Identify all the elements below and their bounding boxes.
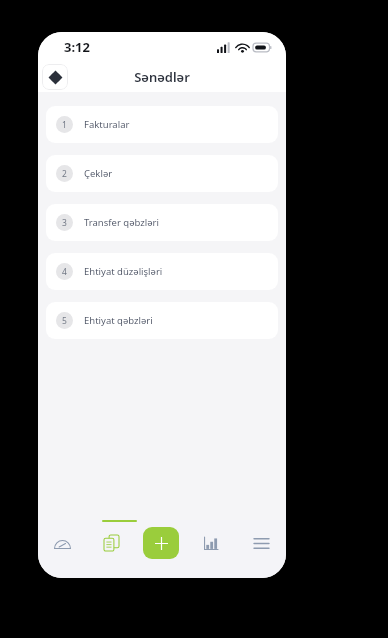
- button[interactable]: Dashboard: [38, 520, 87, 566]
- button[interactable]: 4: [46, 253, 278, 290]
- button[interactable]: 1: [46, 106, 278, 143]
- staticText: Ehtiyat qəbzləri: [84, 314, 153, 327]
- button[interactable]: Reports: [186, 520, 236, 566]
- staticText: Çeklər: [84, 167, 113, 180]
- button[interactable]: 5: [46, 302, 278, 339]
- button[interactable]: 3: [46, 204, 278, 241]
- staticText: 3: [62, 217, 67, 229]
- button[interactable]: More: [236, 520, 286, 566]
- staticText: 4: [62, 266, 67, 278]
- button[interactable]: Documents: [87, 520, 136, 566]
- button[interactable]: 2: [46, 155, 278, 192]
- button[interactable]: Add: [143, 527, 179, 559]
- staticText: Sənədlər: [38, 68, 286, 86]
- staticText: Ehtiyat düzəlişləri: [84, 265, 163, 278]
- staticText: 5: [62, 315, 67, 327]
- staticText: 3:12: [64, 38, 90, 56]
- button[interactable]: Menu: [42, 64, 68, 90]
- staticText: 2: [62, 168, 67, 180]
- staticText: Fakturalar: [84, 118, 130, 131]
- staticText: Transfer qəbzləri: [84, 216, 159, 229]
- staticText: 1: [62, 119, 67, 131]
